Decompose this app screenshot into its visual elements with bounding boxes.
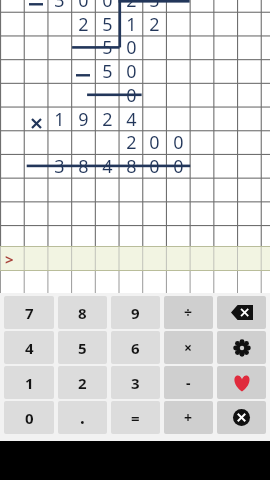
- staticText: 1: [54, 107, 65, 131]
- staticText: 4: [126, 107, 137, 131]
- staticText: 9: [78, 107, 89, 131]
- staticText: 2: [126, 130, 137, 154]
- button[interactable]: .: [58, 401, 107, 434]
- button[interactable]: 7: [4, 296, 54, 329]
- staticText: 6: [131, 338, 140, 358]
- button[interactable]: Settings: [217, 331, 266, 364]
- staticText: 3: [131, 373, 140, 393]
- button[interactable]: Backspace: [217, 296, 266, 329]
- button[interactable]: 2: [58, 366, 107, 399]
- staticText: 0: [149, 130, 160, 154]
- staticText: 0: [126, 59, 137, 83]
- button[interactable]: Clear: [217, 401, 266, 434]
- staticText: 2: [149, 12, 160, 36]
- staticText: 5: [102, 59, 113, 83]
- staticText: 2: [102, 107, 113, 131]
- button[interactable]: =: [111, 401, 160, 434]
- staticText: 5: [102, 35, 113, 59]
- staticText: 8: [78, 154, 89, 178]
- staticText: 0: [173, 130, 184, 154]
- staticText: 2: [78, 12, 89, 36]
- button[interactable]: 6: [111, 331, 160, 364]
- staticText: 0: [126, 35, 137, 59]
- staticText: 0: [102, 0, 113, 12]
- staticText: 8: [126, 154, 137, 178]
- staticText: ×: [184, 338, 193, 357]
- button[interactable]: 4: [4, 331, 54, 364]
- button[interactable]: 1: [4, 366, 54, 399]
- staticText: 7: [25, 303, 34, 323]
- staticText: 5: [78, 338, 87, 358]
- staticText: 4: [25, 338, 34, 358]
- button[interactable]: 0: [4, 401, 54, 434]
- button[interactable]: 9: [111, 296, 160, 329]
- button[interactable]: >: [0, 246, 270, 271]
- button[interactable]: 3: [111, 366, 160, 399]
- button[interactable]: ÷: [164, 296, 213, 329]
- staticText: 8: [78, 303, 87, 323]
- staticText: 2: [78, 373, 87, 393]
- staticText: 9: [131, 303, 140, 323]
- button[interactable]: ×: [164, 331, 213, 364]
- staticText: 3: [54, 0, 65, 12]
- button[interactable]: 8: [58, 296, 107, 329]
- staticText: 4: [102, 154, 113, 178]
- button[interactable]: 5: [58, 331, 107, 364]
- staticText: ÷: [184, 303, 193, 322]
- staticText: 0: [126, 83, 137, 107]
- button[interactable]: +: [164, 401, 213, 434]
- staticText: 0: [25, 408, 34, 428]
- staticText: 2: [126, 0, 137, 12]
- staticText: 5: [149, 0, 160, 12]
- staticText: .: [80, 406, 85, 429]
- staticText: 0: [173, 154, 184, 178]
- button[interactable]: -: [164, 366, 213, 399]
- button[interactable]: Favorite: [217, 366, 266, 399]
- staticText: 1: [25, 373, 34, 393]
- staticText: 0: [78, 0, 89, 12]
- staticText: 1: [126, 12, 137, 36]
- staticText: =: [131, 408, 140, 428]
- staticText: +: [184, 408, 193, 427]
- staticText: -: [186, 373, 191, 392]
- staticText: 0: [149, 154, 160, 178]
- staticText: 3: [54, 154, 65, 178]
- staticText: 5: [102, 12, 113, 36]
- staticText: >: [5, 249, 14, 269]
